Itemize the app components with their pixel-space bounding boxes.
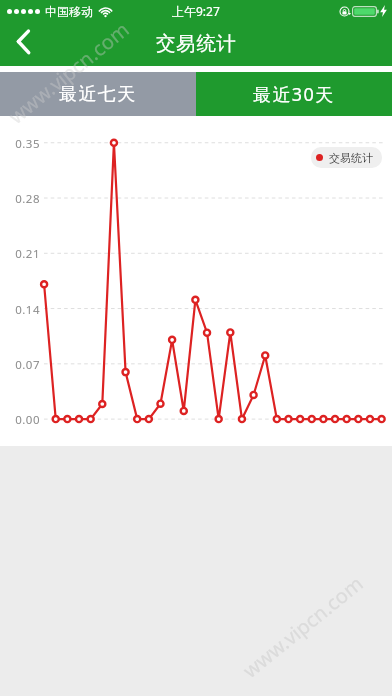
staticText: www.vipcn.com	[237, 569, 369, 683]
button[interactable]: 最近30天	[196, 72, 392, 116]
staticText: 交易统计	[156, 31, 237, 56]
staticText: 最近七天	[59, 83, 137, 106]
button[interactable]: Back	[0, 20, 44, 66]
button[interactable]: 最近七天	[0, 72, 196, 116]
staticText: 0.21	[15, 246, 40, 262]
staticText: 0.14	[15, 302, 40, 318]
staticText: 最近30天	[253, 82, 335, 107]
staticText: 0.00	[15, 412, 40, 428]
staticText: 0.28	[15, 191, 40, 207]
staticText: 交易统计	[329, 151, 373, 165]
staticText: 0.35	[15, 136, 40, 152]
staticText: 中国移动	[45, 4, 93, 19]
staticText: www.vipcn.com	[3, 15, 135, 129]
staticText: 上午9:27	[172, 3, 220, 19]
staticText: 0.07	[15, 357, 40, 373]
button[interactable]: 交易统计	[311, 147, 382, 168]
